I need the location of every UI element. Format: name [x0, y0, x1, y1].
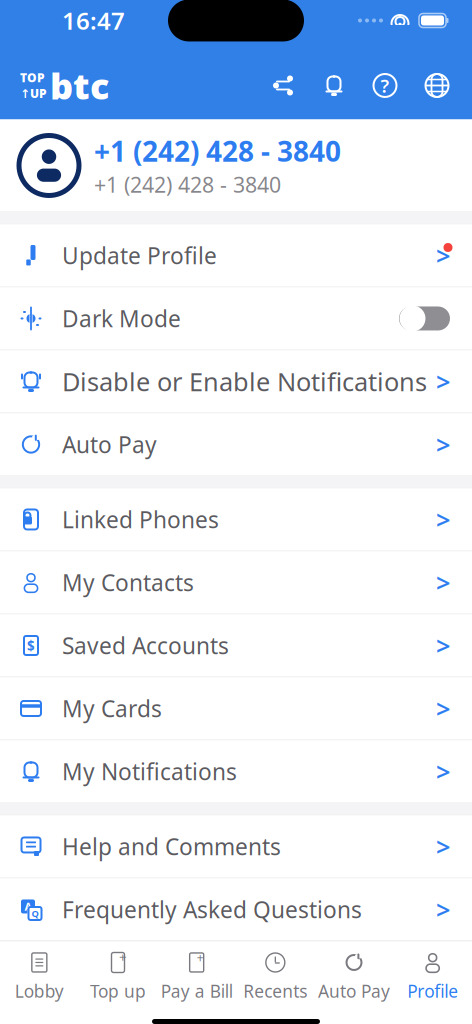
staticText: >	[436, 692, 450, 725]
staticText: Auto Pay	[62, 429, 157, 459]
button[interactable]: Share	[270, 72, 296, 98]
button[interactable]: Dark Mode	[0, 287, 472, 349]
button[interactable]: Profile	[393, 941, 472, 1008]
button[interactable]: Auto Pay	[315, 941, 393, 1008]
staticText: +	[197, 949, 204, 965]
staticText: >	[436, 566, 450, 599]
button[interactable]: Notifications	[322, 73, 346, 97]
staticText: Pay a Bill	[161, 979, 233, 1002]
staticText: >	[436, 365, 450, 398]
staticText: Saved Accounts	[62, 630, 229, 660]
button[interactable]: +	[157, 941, 236, 1008]
staticText: >	[436, 503, 450, 536]
button[interactable]: +1 (242) 428 - 3840	[0, 119, 472, 211]
staticText: >	[436, 755, 450, 788]
staticText: Recents	[243, 979, 307, 1002]
staticText: My Cards	[62, 693, 162, 723]
button[interactable]: Auto Pay	[0, 413, 472, 475]
button[interactable]: Help and Comments	[0, 815, 472, 877]
staticText: 16:47	[62, 5, 125, 36]
staticText: ?	[380, 73, 389, 98]
staticText: My Notifications	[62, 756, 237, 786]
button[interactable]: $	[0, 614, 472, 676]
staticText: >	[436, 893, 450, 926]
button[interactable]: Recents	[236, 941, 315, 1008]
staticText: +	[119, 948, 127, 965]
button[interactable]: Update Profile	[0, 224, 472, 286]
button[interactable]: My Cards	[0, 677, 472, 739]
staticText: ↑UP	[20, 85, 47, 101]
staticText: btc	[50, 62, 109, 109]
staticText: Lobby	[15, 979, 64, 1002]
staticText: >	[436, 239, 450, 272]
button[interactable]: A	[0, 878, 472, 940]
staticText: Help and Comments	[62, 831, 281, 861]
button[interactable]: Help	[372, 72, 398, 98]
staticText: Top up	[90, 979, 146, 1002]
staticText: >	[436, 428, 450, 461]
staticText: >	[436, 629, 450, 662]
button[interactable]: +	[79, 941, 157, 1008]
staticText: Frequently Asked Questions	[62, 894, 362, 924]
staticText: My Contacts	[62, 567, 194, 597]
staticText: Disable or Enable Notifications	[62, 365, 427, 398]
staticText: Q	[31, 907, 38, 920]
staticText: Update Profile	[62, 240, 217, 270]
staticText: $	[27, 637, 35, 654]
staticText: A	[24, 899, 31, 914]
staticText: +1 (242) 428 - 3840	[94, 170, 281, 199]
button[interactable]: BTC Top Up home	[20, 62, 109, 109]
button[interactable]: Lobby	[0, 941, 79, 1008]
button[interactable]: Disable or Enable Notifications	[0, 350, 472, 412]
staticText: +1 (242) 428 - 3840	[94, 132, 341, 169]
button[interactable]: My Notifications	[0, 740, 472, 802]
staticText: Profile	[407, 979, 458, 1002]
staticText: Dark Mode	[62, 303, 181, 333]
staticText: TOP	[20, 70, 45, 85]
staticText: Auto Pay	[318, 979, 390, 1002]
button[interactable]: Language	[424, 72, 450, 98]
button[interactable]: My Contacts	[0, 551, 472, 613]
staticText: Linked Phones	[62, 504, 219, 534]
button[interactable]: Linked Phones	[0, 488, 472, 550]
staticText: >	[436, 830, 450, 863]
